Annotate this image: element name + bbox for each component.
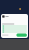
button[interactable]: Model [18,7,22,11]
button[interactable]: Accept [16,33,27,37]
